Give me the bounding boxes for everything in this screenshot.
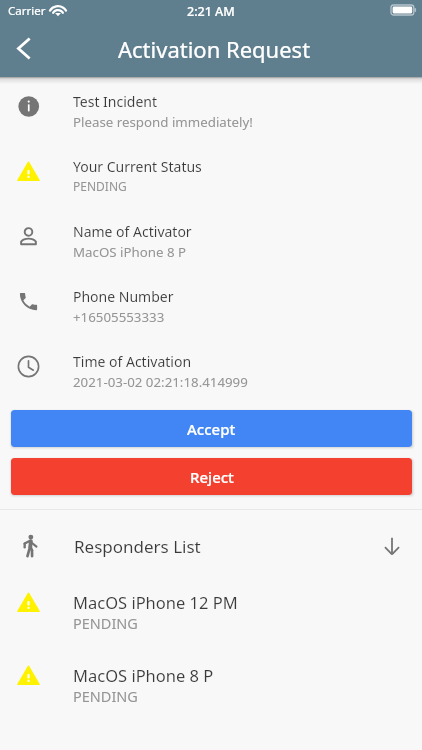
staticText: PENDING: [73, 686, 138, 706]
button[interactable]: Phone Number: [0, 269, 422, 334]
staticText: 2:21 AM: [187, 3, 235, 20]
staticText: MacOS iPhone 8 P: [73, 664, 214, 686]
button[interactable]: Time of Activation: [0, 334, 422, 399]
staticText: MacOS iPhone 8 P: [73, 243, 187, 261]
staticText: Time of Activation: [73, 352, 192, 371]
button[interactable]: Name of Activator: [0, 204, 422, 269]
staticText: Accept: [187, 419, 236, 439]
button[interactable]: Test Incident: [0, 74, 422, 139]
staticText: MacOS iPhone 12 PM: [73, 591, 238, 613]
button[interactable]: MacOS iPhone 8 P: [0, 639, 422, 711]
button[interactable]: Reject: [11, 458, 412, 495]
staticText: Name of Activator: [73, 222, 192, 241]
staticText: Your Current Status: [73, 157, 202, 176]
staticText: Activation Request: [118, 34, 311, 64]
staticText: PENDING: [73, 178, 127, 194]
button[interactable]: Responders List: [0, 512, 422, 578]
button[interactable]: Your Current Status: [0, 139, 422, 204]
button[interactable]: Back: [1, 24, 45, 77]
button[interactable]: MacOS iPhone 12 PM: [0, 566, 422, 638]
staticText: Test Incident: [73, 92, 158, 111]
button[interactable]: Accept: [11, 410, 412, 447]
staticText: Carrier: [8, 3, 46, 19]
staticText: Reject: [190, 467, 234, 487]
staticText: +16505553333: [73, 308, 165, 326]
staticText: 2021-03-02 02:21:18.414999: [73, 373, 248, 391]
staticText: Phone Number: [73, 287, 174, 306]
other: Expand list: [381, 535, 403, 557]
staticText: Please respond immediately!: [73, 113, 253, 131]
staticText: PENDING: [73, 613, 138, 633]
staticText: Responders List: [74, 535, 201, 558]
